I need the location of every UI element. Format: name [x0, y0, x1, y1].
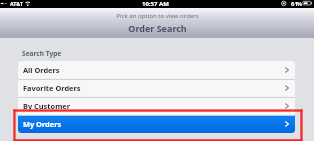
staticText: %	[297, 0, 302, 7]
staticText: 10:57 AM	[142, 0, 169, 8]
button[interactable]: Favorite Orders	[18, 79, 295, 97]
staticText: Favorite Orders	[23, 83, 81, 93]
staticText: All Orders	[23, 65, 60, 75]
button[interactable]: By Customer	[18, 97, 295, 115]
staticText: By Customer	[23, 101, 71, 111]
staticText: Order Search	[128, 22, 187, 34]
staticText: 61	[291, 0, 298, 8]
staticText: Search Type	[22, 49, 62, 58]
staticText: Pick an option to view orders	[116, 11, 199, 19]
button[interactable]: All Orders	[18, 61, 295, 79]
button[interactable]: My Orders	[18, 115, 295, 133]
staticText: AT&T	[10, 0, 23, 7]
staticText: My Orders	[23, 119, 62, 129]
